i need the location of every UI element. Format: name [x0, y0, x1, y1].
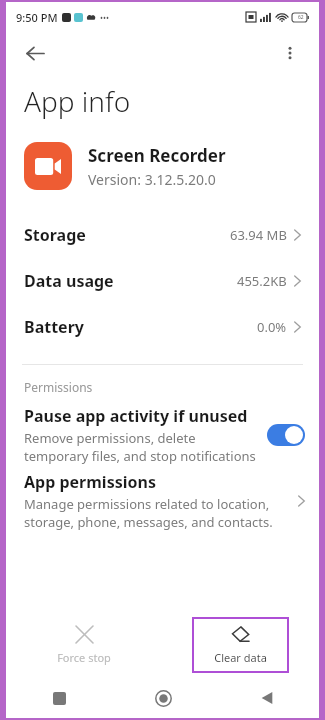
staticText: 455.2KB: [237, 272, 287, 290]
button[interactable]: Recent apps: [42, 681, 76, 715]
button[interactable]: Force stop: [39, 619, 129, 671]
staticText: Version: 3.12.5.20.0: [88, 170, 216, 189]
staticText: Screen Recorder: [88, 144, 226, 167]
staticText: 63.94 MB: [230, 226, 287, 244]
button[interactable]: Home: [146, 681, 180, 715]
staticText: Battery: [24, 316, 84, 338]
staticText: 9:50 PM: [16, 10, 58, 25]
button[interactable]: Pause app activity if unused: [6, 403, 319, 469]
button[interactable]: Clear data: [192, 617, 289, 673]
staticText: 0.0%: [257, 318, 287, 336]
staticText: Remove permissions, delete temporary fil…: [24, 429, 257, 465]
staticText: App info: [24, 82, 131, 120]
staticText: Pause app activity if unused: [24, 405, 248, 427]
button[interactable]: Data usage: [6, 258, 319, 304]
button[interactable]: More options: [271, 34, 309, 72]
button[interactable]: Battery: [6, 304, 319, 350]
staticText: Clear data: [214, 650, 267, 665]
staticText: Storage: [24, 224, 86, 246]
button[interactable]: Back: [250, 681, 284, 715]
button[interactable]: Back: [16, 34, 54, 72]
staticText: •••: [100, 12, 110, 23]
button[interactable]: Toggle pause app activity: [267, 424, 305, 446]
staticText: Data usage: [24, 270, 114, 292]
button[interactable]: App permissions: [6, 469, 319, 531]
button[interactable]: Storage: [6, 212, 319, 258]
staticText: Force stop: [57, 650, 111, 665]
staticText: 62: [298, 14, 304, 21]
staticText: Permissions: [24, 379, 93, 395]
staticText: App permissions: [24, 471, 156, 493]
staticText: Manage permissions related to location, …: [24, 495, 288, 531]
